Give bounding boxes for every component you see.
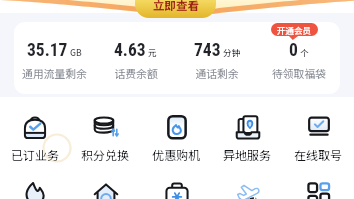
button[interactable]: 立即查看 (135, 0, 216, 18)
button[interactable]: 已订业务 (0, 115, 70, 163)
button[interactable]: 35.17 (14, 27, 95, 94)
button[interactable]: 手机维修 (141, 182, 212, 199)
button[interactable]: 热门活动 (0, 182, 70, 199)
button[interactable]: 积分兑换 (70, 115, 141, 163)
staticText: 异地服务 (223, 146, 272, 163)
staticText: GB (70, 46, 82, 58)
staticText: 35.17 (27, 40, 68, 61)
staticText: 4.63 (114, 40, 146, 61)
button[interactable]: 0 (258, 27, 340, 94)
staticText: 通话剩余 (195, 65, 239, 81)
button[interactable]: 开通会员 (271, 23, 318, 36)
button[interactable]: 全部服务 (283, 182, 354, 199)
staticText: 743 (194, 40, 221, 61)
staticText: 立即查看 (153, 0, 199, 14)
staticText: 元 (148, 46, 157, 58)
staticText: 在线取号 (294, 146, 343, 163)
button[interactable]: 异地服务 (212, 115, 283, 163)
button[interactable]: 国际漫游 (212, 182, 283, 199)
button[interactable]: 4.63 (95, 27, 176, 94)
staticText: 待领取福袋 (272, 65, 326, 81)
staticText: 通用流量剩余 (22, 65, 87, 81)
staticText: 分钟 (223, 46, 241, 58)
button[interactable]: 在线取号 (283, 115, 354, 163)
staticText: 开通会员 (277, 24, 312, 36)
button[interactable]: 优惠购机 (141, 115, 212, 163)
staticText: 优惠购机 (152, 146, 201, 163)
staticText: 个 (300, 46, 309, 58)
staticText: 积分兑换 (81, 146, 130, 163)
staticText: 0 (289, 40, 298, 61)
staticText: 已订业务 (11, 146, 60, 163)
staticText: 话费余额 (114, 65, 158, 81)
button[interactable]: 智慧家庭 (70, 182, 141, 199)
button[interactable]: 743 (176, 27, 258, 94)
